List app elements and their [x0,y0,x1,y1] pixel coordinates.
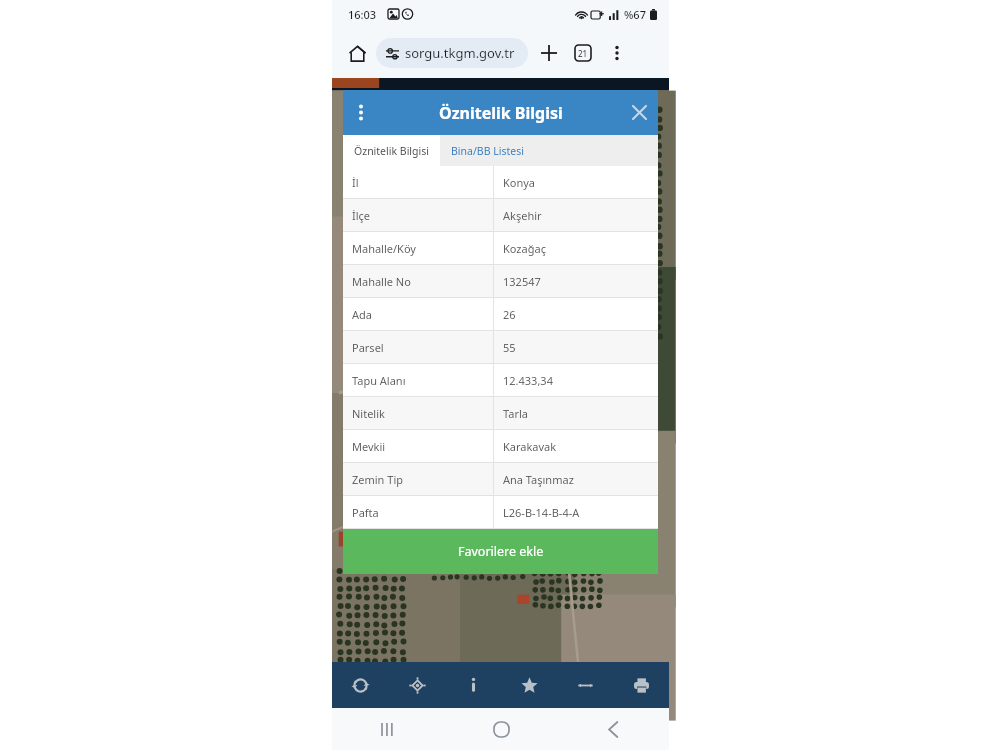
staticText: L26-B-14-B-4-A [503,505,580,520]
staticText: İlçe [352,208,371,223]
button[interactable]: Locate [389,662,445,708]
button[interactable]: Home [445,708,557,750]
button[interactable]: Menu [343,90,379,135]
button[interactable]: Tapu Alanı [343,364,658,396]
button[interactable]: Home [340,36,374,70]
button[interactable]: Parsel [343,331,658,363]
staticText: Tarla [503,406,528,421]
staticText: Ada [352,307,372,322]
staticText: 132547 [503,274,541,289]
button[interactable]: İl [343,166,658,198]
staticText: Bina/BB Listesi [451,144,524,158]
button[interactable]: Pafta [343,496,658,528]
button[interactable]: Mahalle No [343,265,658,297]
button[interactable]: Mahalle/Köy [343,232,658,264]
staticText: Öznitelik Bilgisi [354,144,429,158]
button[interactable]: Öznitelik Bilgisi [343,135,440,166]
staticText: Ana Taşınmaz [503,472,574,487]
staticText: Mahalle/Köy [352,241,416,256]
staticText: Akşehir [503,208,542,223]
button[interactable]: Measure [557,662,613,708]
staticText: Nitelik [352,406,385,421]
button[interactable]: More options [600,36,634,70]
staticText: Parsel [352,340,384,355]
button[interactable]: sorgu.tkgm.gov.tr [376,38,528,68]
staticText: Zemin Tip [352,472,403,487]
button[interactable]: New tab [532,36,566,70]
staticText: Kozağaç [503,241,546,256]
staticText: 55 [503,340,516,355]
button[interactable]: Mevkii [343,430,658,462]
button[interactable]: Recents [332,708,445,750]
button[interactable]: Close [620,90,658,135]
button[interactable]: Info [445,662,501,708]
staticText: Mevkii [352,439,386,454]
staticText: sorgu.tkgm.gov.tr [405,44,515,62]
button[interactable]: Favorilere ekle [343,529,658,574]
staticText: Pafta [352,505,379,520]
button[interactable]: Tabs [566,36,600,70]
button[interactable]: Bina/BB Listesi [440,135,535,166]
staticText: 21 [578,48,588,59]
button[interactable]: Print [613,662,669,708]
button[interactable]: Zemin Tip [343,463,658,495]
staticText: 16:03 [348,7,377,22]
button[interactable]: Nitelik [343,397,658,429]
staticText: 12.433,34 [503,373,553,388]
staticText: Öznitelik Bilgisi [439,102,563,124]
staticText: 26 [503,307,516,322]
button[interactable]: Ada [343,298,658,330]
button[interactable]: İlçe [343,199,658,231]
staticText: Mahalle No [352,274,411,289]
button[interactable]: Favorite [501,662,557,708]
staticText: Konya [503,175,536,190]
button[interactable]: Refresh [332,662,389,708]
staticText: İl [352,175,359,190]
staticText: Karakavak [503,439,557,454]
staticText: Tapu Alanı [352,373,406,388]
staticText: %67 [624,7,646,22]
button[interactable]: Back [557,708,669,750]
staticText: Favorilere ekle [458,543,544,560]
